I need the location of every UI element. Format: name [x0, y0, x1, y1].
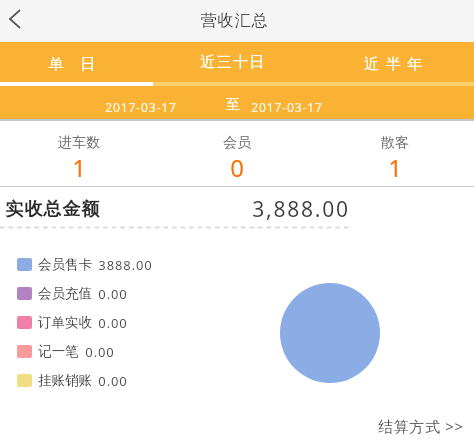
staticText: 进车数: [58, 134, 100, 152]
staticText: 近三十日: [200, 53, 266, 72]
staticText: 营收汇总: [200, 11, 268, 31]
button[interactable]: 会员: [158, 121, 316, 186]
button[interactable]: 结算方式 >>: [368, 408, 474, 441]
button[interactable]: 散客: [316, 121, 474, 186]
staticText: 至: [226, 96, 240, 114]
staticText: 1: [388, 151, 402, 184]
staticText: 1: [72, 151, 86, 184]
staticText: 实收总金额: [5, 198, 100, 221]
staticText: 0.00: [98, 285, 128, 303]
staticText: 0.00: [98, 372, 128, 390]
button[interactable]: 近 半 年: [316, 42, 474, 83]
staticText: 近 半 年: [364, 53, 424, 73]
button[interactable]: Back: [0, 0, 42, 42]
button[interactable]: 单 日: [0, 42, 158, 83]
button[interactable]: 近三十日: [158, 42, 316, 83]
staticText: 2017-03-17: [251, 99, 323, 115]
staticText: 会员充值: [38, 285, 92, 302]
staticText: 3888.00: [98, 256, 153, 274]
staticText: 挂账销账: [38, 372, 92, 389]
button[interactable]: 进车数: [0, 121, 158, 186]
staticText: 散客: [381, 134, 409, 152]
staticText: 单 日: [48, 53, 97, 73]
staticText: 2017-03-17: [105, 99, 177, 115]
staticText: 0.00: [98, 314, 128, 332]
staticText: 记一笔: [38, 343, 79, 360]
staticText: 结算方式 >>: [378, 416, 464, 436]
staticText: 3,888.00: [252, 195, 350, 224]
staticText: 0.00: [85, 343, 115, 361]
staticText: 会员: [223, 134, 251, 152]
staticText: 订单实收: [38, 314, 92, 331]
staticText: 会员售卡: [38, 256, 92, 273]
staticText: 0: [230, 151, 244, 184]
